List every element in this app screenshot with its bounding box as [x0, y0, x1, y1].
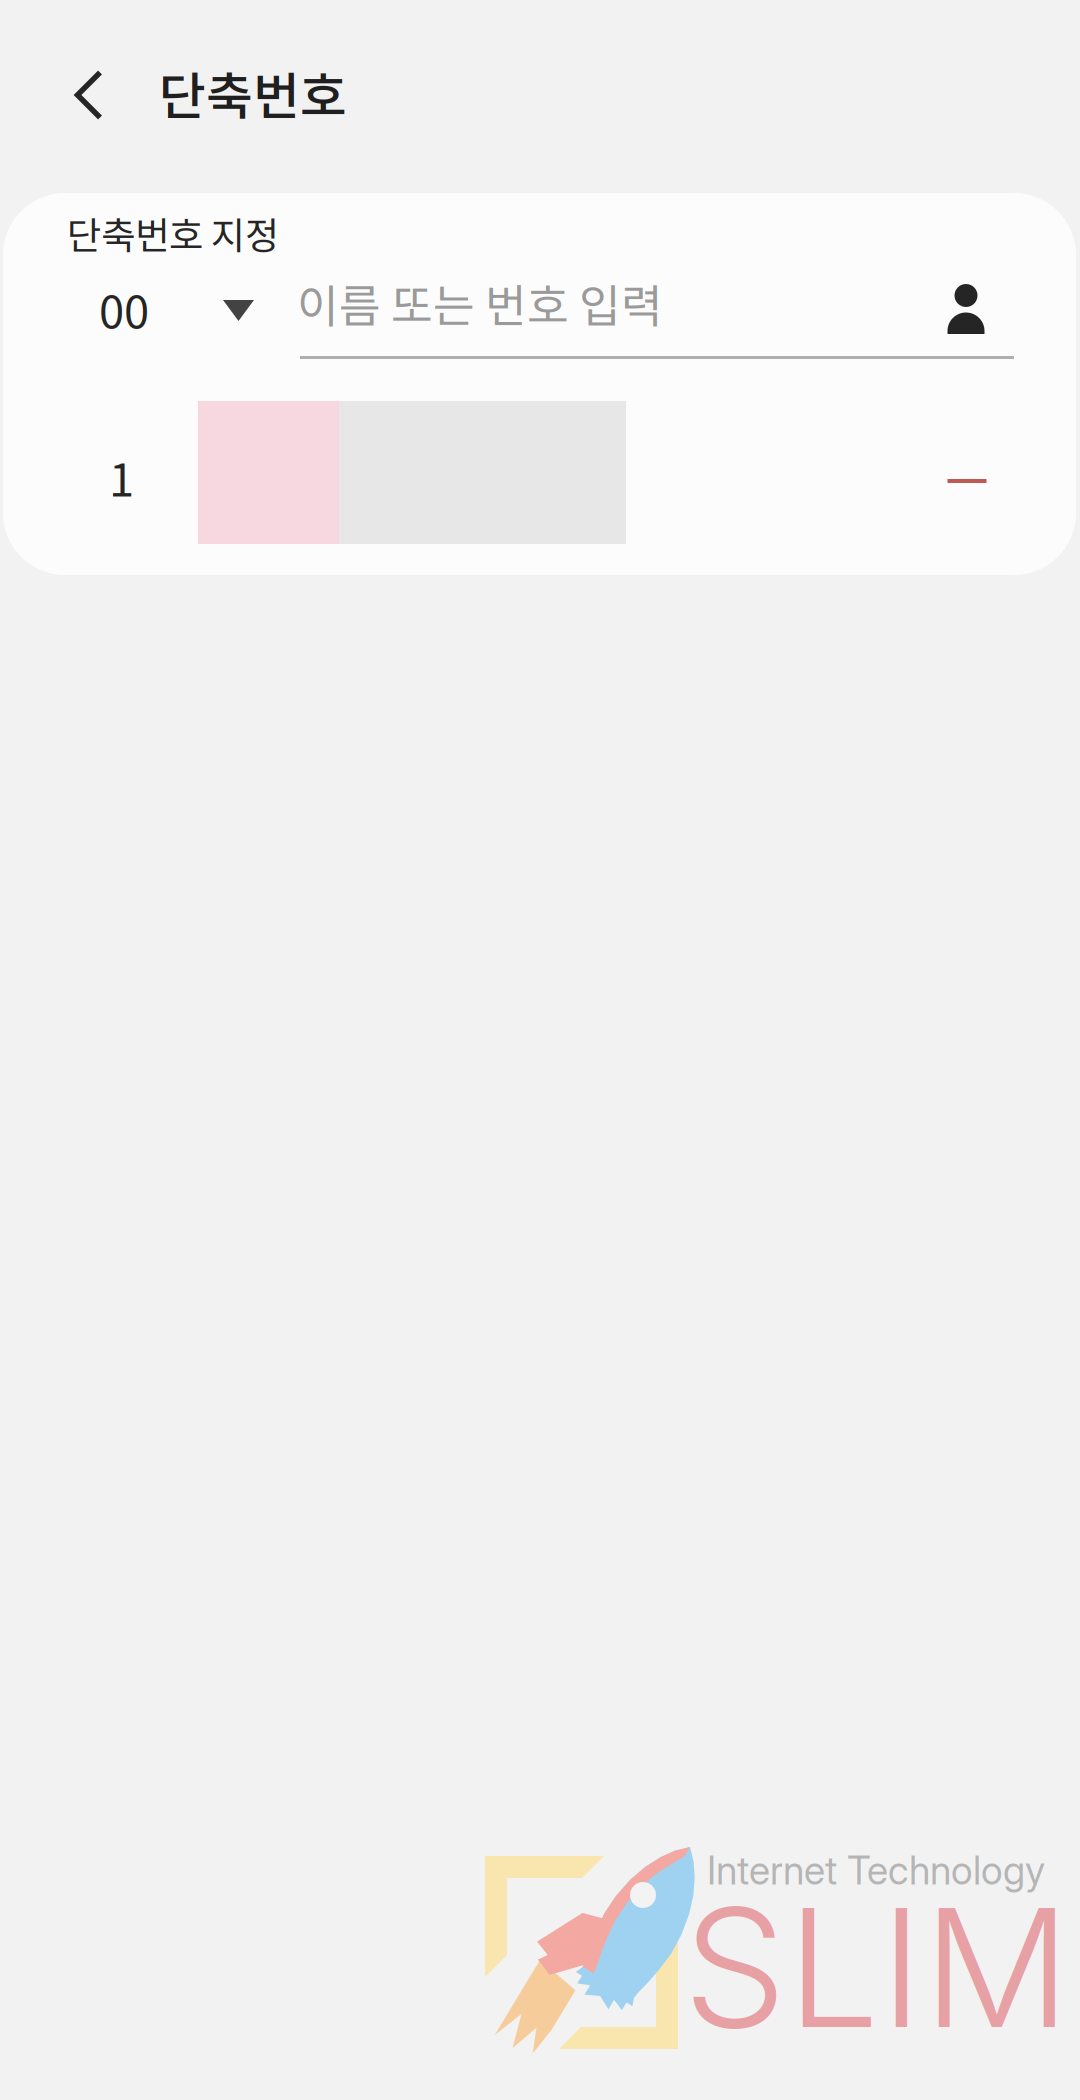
staticText: 단축번호 지정	[67, 206, 279, 260]
staticText: 1	[109, 444, 134, 510]
staticText: 00	[99, 276, 149, 342]
button[interactable]: Speed dial number 00	[99, 251, 289, 351]
staticText: SLIM	[683, 1868, 1071, 2066]
staticText: 단축번호	[159, 56, 347, 129]
button[interactable]: Choose contact	[916, 259, 1016, 359]
button[interactable]: Back	[34, 40, 144, 150]
button[interactable]: Enter name or number	[297, 258, 1010, 358]
button[interactable]: Remove speed dial 1	[912, 431, 1022, 531]
staticText: Internet Technology	[707, 1847, 1045, 1894]
staticText: 이름 또는 번호 입력	[297, 270, 663, 336]
